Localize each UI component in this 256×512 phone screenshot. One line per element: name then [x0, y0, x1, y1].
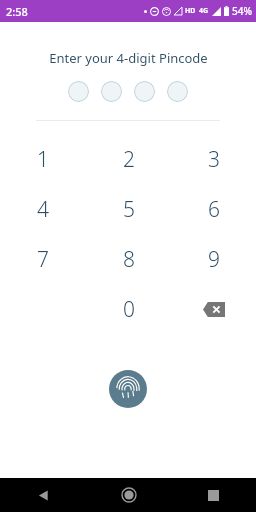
- staticText: 54%: [232, 4, 252, 18]
- staticText: Enter your 4-digit Pincode: [49, 49, 208, 67]
- button[interactable]: 0: [86, 284, 171, 334]
- staticText: 2:58: [6, 4, 28, 19]
- button[interactable]: 7: [0, 234, 86, 284]
- staticText: 7: [37, 245, 49, 274]
- staticText: 1: [37, 145, 49, 174]
- button[interactable]: 8: [86, 234, 171, 284]
- staticText: 4: [37, 195, 49, 224]
- staticText: 0: [123, 295, 135, 324]
- staticText: 9: [208, 245, 220, 274]
- button[interactable]: Backspace: [171, 284, 256, 334]
- button[interactable]: Unlock with fingerprint: [109, 370, 147, 408]
- button[interactable]: 6: [171, 184, 256, 234]
- button[interactable]: 4: [0, 184, 86, 234]
- button[interactable]: 9: [171, 234, 256, 284]
- staticText: HD: [185, 6, 196, 16]
- button[interactable]: 2: [86, 134, 171, 184]
- button[interactable]: 1: [0, 134, 86, 184]
- staticText: 3: [208, 145, 220, 174]
- button[interactable]: Home: [86, 478, 171, 512]
- button[interactable]: 5: [86, 184, 171, 234]
- staticText: 8: [123, 245, 135, 274]
- button[interactable]: Back: [0, 478, 86, 512]
- button[interactable]: Recent apps: [171, 478, 256, 512]
- staticText: 2: [123, 145, 135, 174]
- staticText: 4G: [199, 6, 209, 16]
- staticText: 6: [208, 195, 220, 224]
- staticText: 5: [123, 195, 135, 224]
- button[interactable]: 3: [171, 134, 256, 184]
